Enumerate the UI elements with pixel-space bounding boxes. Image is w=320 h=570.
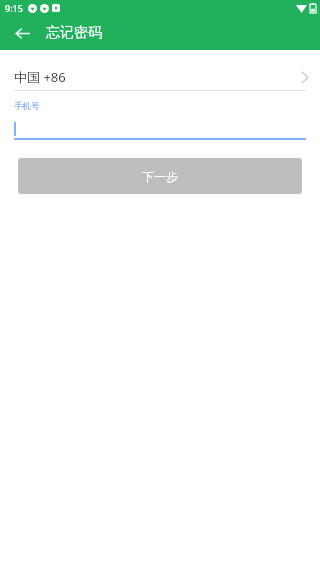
staticText: 下一步 bbox=[142, 169, 178, 184]
staticText: 忘记密码 bbox=[46, 24, 102, 42]
button[interactable]: 下一步 bbox=[18, 158, 302, 194]
button[interactable]: 手机号 bbox=[14, 101, 306, 140]
staticText: 手机号 bbox=[14, 101, 40, 112]
button[interactable]: 中国 +86 bbox=[0, 64, 320, 90]
staticText: 9:15 bbox=[5, 2, 23, 14]
staticText: 中国 +86 bbox=[14, 68, 66, 86]
button[interactable]: Back bbox=[8, 19, 36, 47]
